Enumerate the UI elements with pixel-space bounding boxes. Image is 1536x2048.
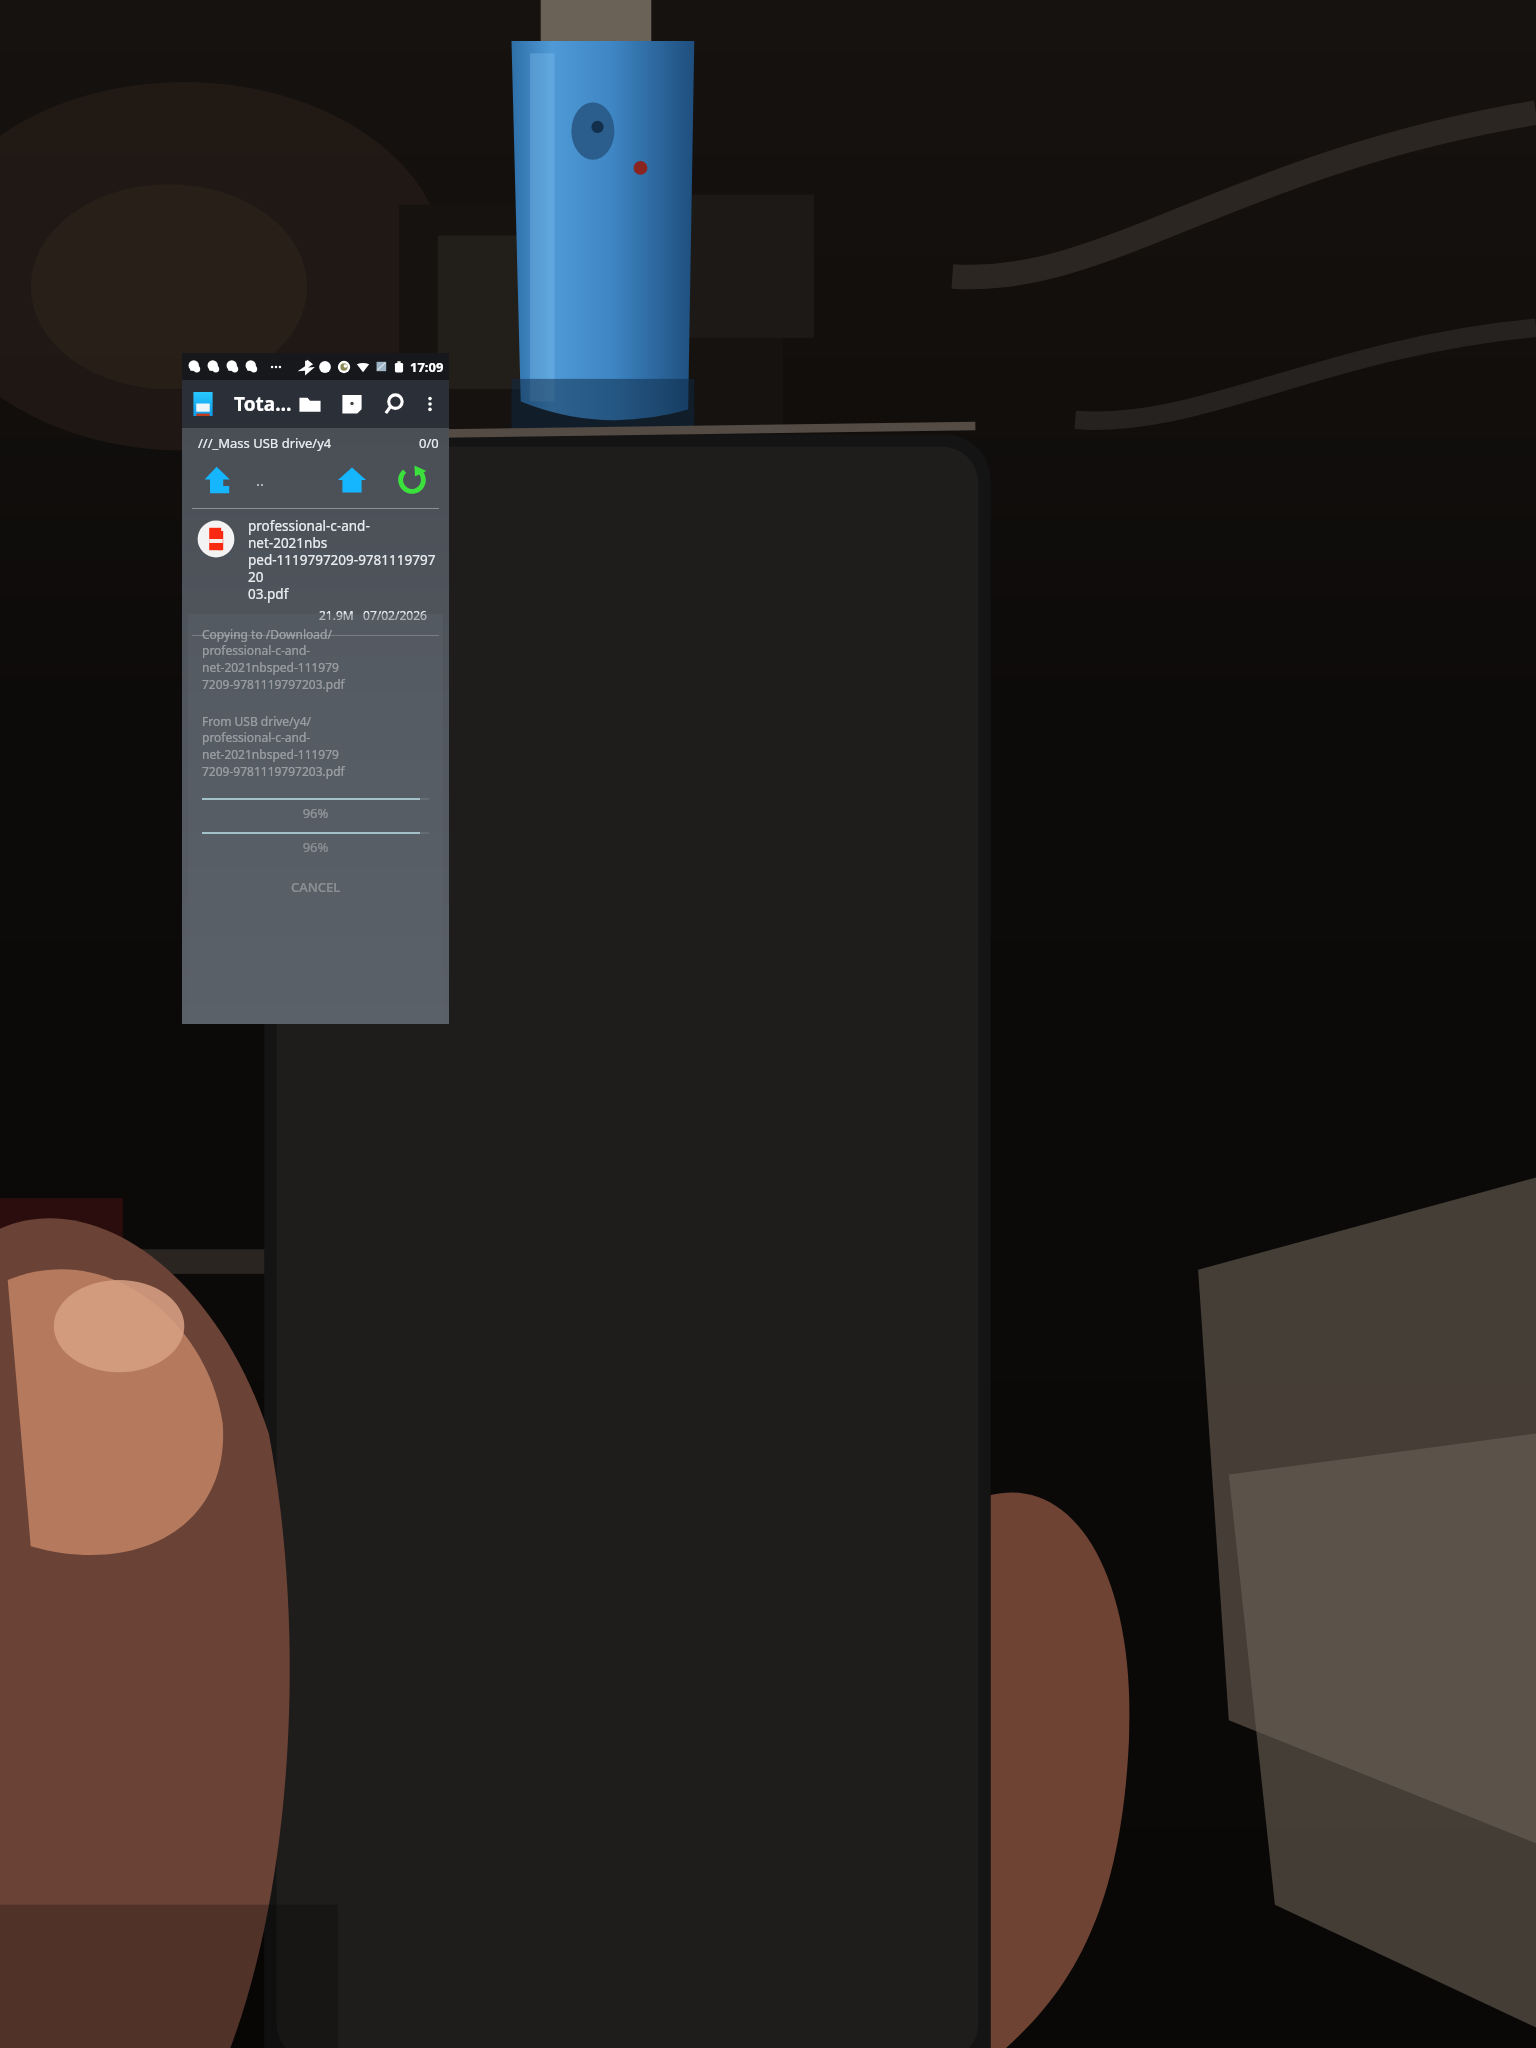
button[interactable]: Home <box>329 457 375 503</box>
button[interactable]: Folders <box>293 387 327 421</box>
button[interactable]: More options <box>417 391 443 417</box>
button[interactable]: professional-c-and-net-2021nbs ped-11197… <box>182 509 449 631</box>
button[interactable]: ///_Mass USB drive/y4 <box>198 434 439 452</box>
staticText: 17:09 <box>410 358 444 376</box>
button[interactable]: Total Commander <box>188 389 218 419</box>
staticText: 21.9M 07/02/2026 <box>319 607 437 623</box>
staticText: 96% <box>202 804 429 822</box>
button[interactable]: CANCEL <box>202 878 429 896</box>
staticText: 0/0 <box>419 434 439 452</box>
button[interactable]: Select <box>335 387 369 421</box>
button[interactable]: Tota… <box>234 391 292 417</box>
staticText: CANCEL <box>291 878 341 896</box>
button[interactable]: Refresh <box>389 457 435 503</box>
button[interactable]: .. <box>256 470 265 490</box>
staticText: Copying to /Download/ professional-c-and… <box>202 626 429 693</box>
button[interactable]: Search <box>377 387 411 421</box>
staticText: From USB drive/y4/ professional-c-and-ne… <box>202 713 429 780</box>
staticText: 96% <box>202 838 429 856</box>
button[interactable]: Up one level <box>196 457 242 503</box>
staticText: ///_Mass USB drive/y4 <box>198 434 332 452</box>
staticText: professional-c-and-net-2021nbs ped-11197… <box>248 517 437 603</box>
